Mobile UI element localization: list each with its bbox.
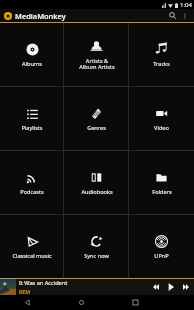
- button[interactable]: Classical music: [0, 215, 64, 278]
- staticText: Playlists: [21, 124, 43, 132]
- button[interactable]: Artists & Album Artists: [64, 23, 129, 86]
- button[interactable]: Podcasts: [0, 151, 64, 214]
- staticText: REM: [19, 288, 30, 295]
- staticText: Video: [154, 124, 169, 132]
- button[interactable]: Folders: [129, 151, 194, 214]
- staticText: Podcasts: [20, 188, 44, 196]
- staticText: Folders: [152, 188, 172, 196]
- button[interactable]: Back: [0, 295, 54, 310]
- button[interactable]: Home: [54, 295, 108, 310]
- button[interactable]: Playlists: [0, 87, 64, 150]
- button[interactable]: Next: [179, 280, 193, 294]
- staticText: Albums: [22, 60, 42, 68]
- staticText: 1:04: [180, 1, 192, 9]
- staticText: UPnP: [154, 252, 169, 260]
- button[interactable]: Genres: [64, 87, 129, 150]
- staticText: Artists & Album Artists: [79, 57, 115, 71]
- staticText: Sync now: [84, 252, 109, 260]
- staticText: MediaMonkey: [15, 11, 66, 21]
- staticText: Genres: [87, 124, 106, 132]
- button[interactable]: UPnP: [129, 215, 194, 278]
- staticText: Tracks: [153, 60, 170, 68]
- staticText: Classical music: [12, 252, 52, 260]
- button[interactable]: It Was an Accident: [0, 279, 194, 295]
- button[interactable]: Audiobooks: [64, 151, 129, 214]
- button[interactable]: Play: [163, 279, 179, 295]
- button[interactable]: Recent apps: [108, 295, 162, 310]
- button[interactable]: Search: [166, 9, 179, 22]
- staticText: It Was an Accident: [19, 279, 68, 287]
- button[interactable]: Tracks: [129, 23, 194, 86]
- button[interactable]: More options: [179, 10, 190, 21]
- staticText: Audiobooks: [81, 188, 113, 196]
- button[interactable]: Previous: [149, 280, 163, 294]
- button[interactable]: Video: [129, 87, 194, 150]
- button[interactable]: Sync now: [64, 215, 129, 278]
- button[interactable]: Albums: [0, 23, 64, 86]
